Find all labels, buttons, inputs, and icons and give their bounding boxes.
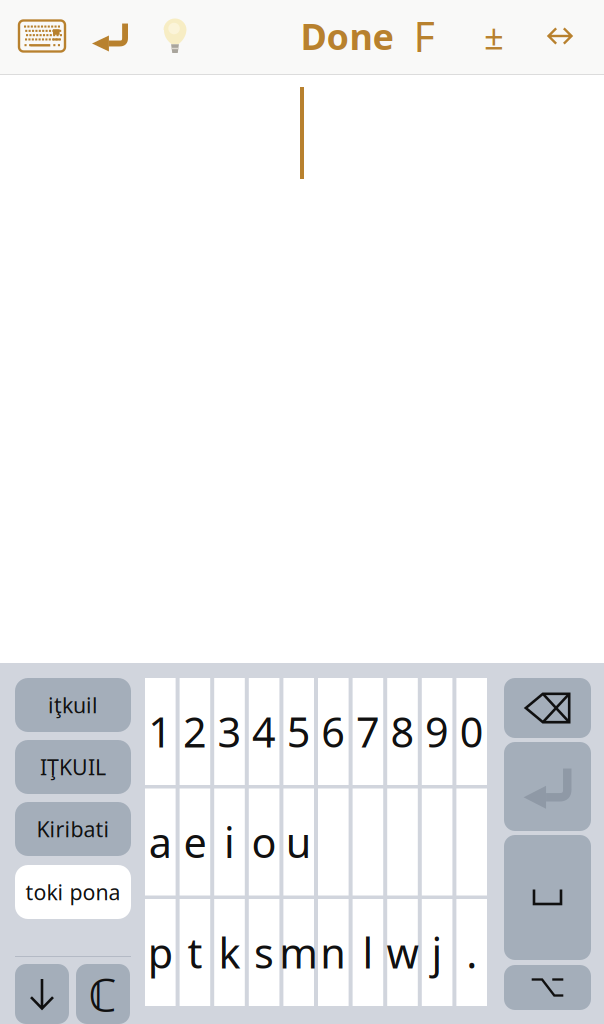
- staticText: IŢKUIL: [40, 753, 106, 781]
- staticText: e: [183, 815, 206, 869]
- staticText: o: [252, 815, 277, 869]
- button[interactable]: a: [145, 788, 176, 895]
- staticText: u: [286, 815, 312, 869]
- button[interactable]: s: [249, 899, 279, 1006]
- button[interactable]: [353, 788, 383, 895]
- staticText: Done: [300, 12, 393, 60]
- button[interactable]: [422, 788, 452, 895]
- button[interactable]: Alternate layer: [504, 965, 591, 1010]
- button[interactable]: 2: [180, 678, 210, 785]
- button[interactable]: Delete: [504, 678, 591, 738]
- staticText: k: [218, 925, 240, 980]
- staticText: m: [279, 925, 318, 980]
- staticText: 1: [148, 704, 172, 759]
- staticText: n: [320, 925, 346, 980]
- button[interactable]: ±: [466, 8, 522, 64]
- button[interactable]: l: [353, 899, 383, 1006]
- button[interactable]: .: [456, 899, 487, 1006]
- button[interactable]: 3: [214, 678, 245, 785]
- staticText: 8: [390, 704, 414, 759]
- button[interactable]: o: [249, 788, 279, 895]
- staticText: a: [149, 815, 172, 869]
- staticText: ±: [484, 13, 504, 59]
- button[interactable]: 7: [353, 678, 383, 785]
- button[interactable]: toki pona: [15, 865, 131, 919]
- button[interactable]: i: [214, 788, 245, 895]
- button[interactable]: 9: [422, 678, 452, 785]
- staticText: 9: [425, 704, 449, 759]
- button[interactable]: Hide keyboard: [15, 964, 69, 1024]
- button[interactable]: m: [283, 899, 314, 1006]
- staticText: w: [386, 925, 418, 980]
- button[interactable]: Insert return: [79, 8, 141, 64]
- staticText: 5: [287, 704, 311, 759]
- button[interactable]: Keyboard: [11, 8, 73, 64]
- button[interactable]: Hint: [144, 8, 206, 64]
- staticText: i: [224, 815, 235, 869]
- staticText: s: [254, 925, 274, 980]
- staticText: 0: [460, 704, 484, 759]
- staticText: ℂ: [88, 964, 117, 1024]
- staticText: iţkuil: [48, 691, 98, 719]
- button[interactable]: [387, 788, 418, 895]
- button[interactable]: p: [145, 899, 176, 1006]
- staticText: 4: [252, 704, 276, 759]
- button[interactable]: n: [318, 899, 349, 1006]
- staticText: F: [413, 9, 434, 63]
- staticText: 6: [321, 704, 345, 759]
- button[interactable]: 0: [456, 678, 487, 785]
- staticText: toki pona: [25, 878, 120, 906]
- button[interactable]: [456, 788, 487, 895]
- button[interactable]: u: [283, 788, 314, 895]
- staticText: 2: [183, 704, 207, 759]
- staticText: 3: [217, 704, 241, 759]
- button[interactable]: Done: [301, 8, 393, 64]
- button[interactable]: 8: [387, 678, 418, 785]
- button[interactable]: F: [396, 8, 452, 64]
- button[interactable]: w: [387, 899, 418, 1006]
- button[interactable]: Return: [504, 742, 591, 831]
- button[interactable]: 6: [318, 678, 349, 785]
- button[interactable]: Resize: [532, 8, 588, 64]
- button[interactable]: [318, 788, 349, 895]
- staticText: .: [466, 925, 477, 980]
- staticText: t: [187, 925, 202, 980]
- button[interactable]: IŢKUIL: [15, 740, 131, 794]
- button[interactable]: 4: [249, 678, 279, 785]
- button[interactable]: 5: [283, 678, 314, 785]
- button[interactable]: t: [180, 899, 210, 1006]
- button[interactable]: Space: [504, 835, 591, 960]
- staticText: p: [148, 925, 173, 980]
- button[interactable]: Special characters: [76, 964, 130, 1024]
- button[interactable]: e: [180, 788, 210, 895]
- button[interactable]: j: [422, 899, 452, 1006]
- button[interactable]: iţkuil: [15, 678, 131, 732]
- staticText: 7: [356, 704, 380, 759]
- button[interactable]: k: [214, 899, 245, 1006]
- button[interactable]: 1: [145, 678, 176, 785]
- staticText: j: [432, 925, 443, 980]
- staticText: Kiribati: [36, 815, 109, 843]
- staticText: l: [362, 925, 373, 980]
- button[interactable]: Kiribati: [15, 802, 131, 856]
